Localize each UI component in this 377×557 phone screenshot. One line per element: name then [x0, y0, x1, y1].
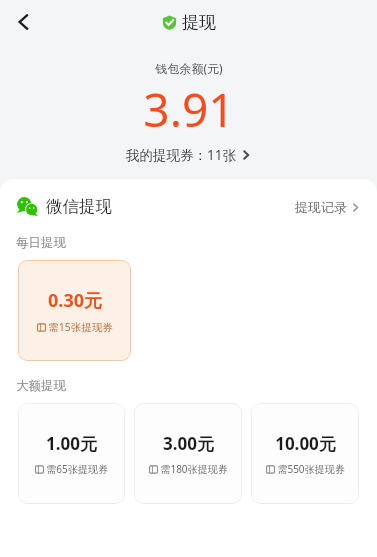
staticText: 1.00元 — [46, 432, 97, 455]
staticText: 我的提现券：11张 — [126, 146, 236, 164]
staticText: 微信提现 — [46, 196, 112, 217]
staticText: 10.00元 — [275, 432, 336, 455]
button[interactable]: 提现记录 — [292, 196, 363, 218]
button[interactable]: 3.00元 — [134, 403, 242, 504]
button[interactable]: 1.00元 — [18, 403, 125, 504]
staticText: 3.91 — [143, 78, 235, 141]
staticText: 大额提现 — [16, 378, 66, 394]
staticText: 需15张提现券 — [48, 320, 113, 334]
staticText: 0.30元 — [48, 288, 102, 313]
button[interactable]: Back — [4, 2, 44, 42]
staticText: 需550张提现券 — [277, 462, 345, 476]
staticText: 3.00元 — [163, 432, 214, 455]
button[interactable]: 我的提现券：11张 — [120, 144, 257, 166]
staticText: 钱包余额(元) — [155, 60, 223, 76]
staticText: 需65张提现券 — [46, 462, 108, 476]
staticText: 提现 — [182, 12, 216, 33]
staticText: 每日提现 — [16, 235, 66, 251]
staticText: 提现记录 — [295, 199, 347, 215]
button[interactable]: 0.30元 — [18, 260, 131, 361]
button[interactable]: 10.00元 — [251, 403, 359, 504]
staticText: 需180张提现券 — [160, 462, 228, 476]
